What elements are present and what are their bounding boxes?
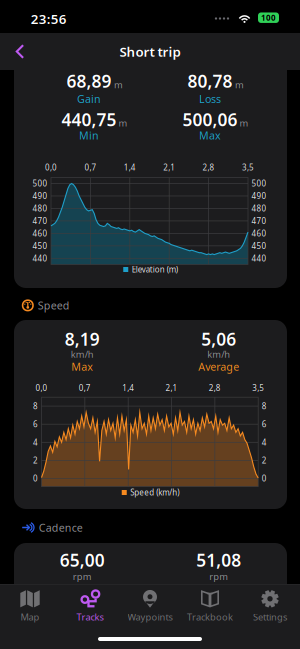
staticText: 500,06 [183,108,238,131]
staticText: 500 [251,178,266,189]
staticText: 480 [32,203,47,214]
staticText: 2,1 [165,382,177,393]
staticText: m [114,78,123,91]
staticText: 3,5 [242,162,254,173]
button[interactable]: Tracks [60,590,120,623]
staticText: m [118,117,127,129]
staticText: 2 [33,455,38,466]
staticText: m [240,117,249,129]
staticText: Loss [199,92,221,106]
staticText: Max [71,360,93,374]
staticText: 450 [251,240,266,251]
staticText: 1,4 [124,162,136,173]
staticText: Cadence [39,520,83,535]
button[interactable]: Waypoints [120,590,180,623]
staticText: 6 [262,419,267,429]
staticText: 490 [32,191,47,201]
staticText: 460 [251,228,266,239]
staticText: Gain [77,92,101,106]
staticText: 4 [262,437,267,448]
staticText: 470 [32,216,47,226]
staticText: 500 [32,178,47,189]
staticText: 480 [251,203,266,214]
staticText: 2,8 [209,382,221,393]
staticText: 0,7 [84,162,96,173]
staticText: km/h [71,348,94,360]
staticText: rpm [209,570,228,582]
staticText: Speed (km/h) [130,487,179,498]
button[interactable]: Map [0,590,60,623]
staticText: Tracks [76,611,103,623]
staticText: 470 [251,216,266,226]
staticText: 0 [33,473,38,484]
staticText: 4 [33,437,38,448]
staticText: 51,08 [196,548,241,571]
staticText: Short trip [119,43,180,60]
staticText: 450 [32,240,47,251]
staticText: Trackbook [187,611,233,623]
staticText: 1,4 [122,382,134,393]
staticText: 0,7 [79,382,91,393]
staticText: 8 [262,401,267,411]
staticText: 2,1 [163,162,175,173]
staticText: rpm [73,570,92,582]
staticText: Average [198,360,239,374]
staticText: 460 [32,228,47,239]
staticText: 23:56 [31,10,67,28]
staticText: 80,78 [188,70,233,93]
button[interactable]: Settings [240,590,300,623]
staticText: Speed [38,298,70,312]
staticText: 440 [32,253,47,264]
staticText: Max [199,128,221,142]
staticText: 65,00 [60,548,105,571]
staticText: 0,0 [35,382,47,393]
staticText: 68,89 [66,70,111,93]
staticText: Waypoints [127,611,172,623]
staticText: Min [79,128,99,142]
staticText: 490 [251,191,266,201]
staticText: 8 [33,401,38,411]
staticText: 8,19 [65,327,100,350]
staticText: 0,0 [45,162,57,173]
staticText: 6 [33,419,38,429]
staticText: 0 [262,473,267,484]
staticText: Elevation (m) [132,264,178,275]
staticText: 440 [251,253,266,264]
staticText: km/h [207,348,230,360]
staticText: Settings [253,611,287,623]
staticText: 2,8 [203,162,215,173]
staticText: 3,5 [252,382,264,393]
staticText: Map [20,611,39,623]
button[interactable]: Trackbook [180,590,240,623]
staticText: 5,06 [201,327,236,350]
staticText: 2 [262,455,267,466]
staticText: m [235,78,244,91]
button[interactable]: Back [5,36,35,66]
staticText: 440,75 [61,108,116,131]
staticText: 100 [261,12,276,23]
